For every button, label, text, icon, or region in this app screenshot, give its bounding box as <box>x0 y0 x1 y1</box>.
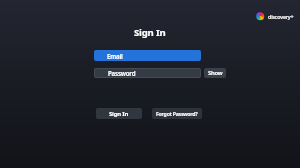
button[interactable]: Forgot Password? <box>152 108 202 119</box>
staticText: Password <box>108 69 136 77</box>
staticText: Forgot Password? <box>156 110 198 117</box>
staticText: Show <box>208 69 223 77</box>
button[interactable]: Email <box>94 50 201 61</box>
staticText: Email <box>107 52 123 60</box>
staticText: Sign In <box>109 110 129 118</box>
staticText: Sign In <box>134 26 166 39</box>
button[interactable]: discovery+ <box>255 11 294 21</box>
button[interactable]: Password <box>94 68 201 78</box>
button[interactable]: Show <box>204 68 226 78</box>
staticText: discovery+ <box>268 13 294 20</box>
button[interactable]: Sign In <box>96 108 142 119</box>
